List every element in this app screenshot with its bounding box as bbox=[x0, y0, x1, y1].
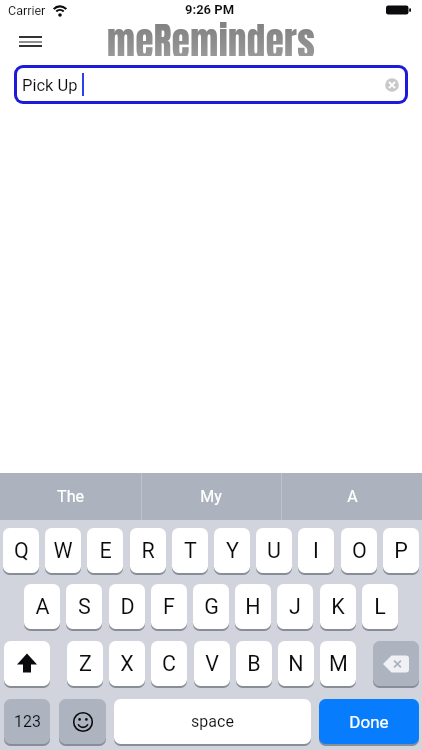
button[interactable]: I bbox=[298, 528, 334, 573]
staticText: A bbox=[347, 487, 358, 506]
button[interactable]: F bbox=[151, 584, 187, 629]
staticText: 123 bbox=[14, 712, 41, 731]
button[interactable]: N bbox=[278, 641, 314, 686]
staticText: Pick Up bbox=[22, 76, 78, 95]
button[interactable]: space bbox=[114, 699, 311, 744]
staticText: T bbox=[184, 538, 197, 563]
button[interactable]: T bbox=[172, 528, 208, 573]
staticText: D bbox=[120, 594, 135, 619]
button[interactable]: Y bbox=[214, 528, 250, 573]
button[interactable]: P bbox=[383, 528, 419, 573]
staticText: K bbox=[331, 594, 345, 619]
staticText: 9:26 PM bbox=[185, 2, 235, 17]
staticText: S bbox=[78, 594, 91, 619]
button[interactable]: A bbox=[282, 473, 422, 520]
staticText: A bbox=[35, 594, 50, 619]
staticText: J bbox=[289, 594, 301, 619]
staticText: M bbox=[329, 651, 348, 676]
button[interactable]: 123 bbox=[4, 699, 50, 744]
button[interactable]: L bbox=[362, 584, 398, 629]
staticText: The bbox=[57, 487, 84, 506]
button[interactable] bbox=[373, 641, 419, 686]
button[interactable]: K bbox=[320, 584, 356, 629]
button[interactable]: R bbox=[130, 528, 166, 573]
staticText: Z bbox=[79, 651, 92, 676]
button[interactable]: S bbox=[66, 584, 102, 629]
staticText: H bbox=[245, 594, 261, 619]
staticText: F bbox=[163, 594, 175, 619]
button[interactable]: Q bbox=[3, 528, 39, 573]
button[interactable]: M bbox=[320, 641, 356, 686]
button[interactable]: E bbox=[87, 528, 123, 573]
button[interactable] bbox=[14, 65, 408, 104]
button[interactable]: The bbox=[0, 473, 140, 520]
staticText: Q bbox=[14, 538, 29, 563]
button[interactable]: My bbox=[141, 473, 281, 520]
button[interactable]: A bbox=[24, 584, 60, 629]
staticText: V bbox=[205, 651, 219, 676]
button[interactable]: X bbox=[109, 641, 145, 686]
button[interactable] bbox=[4, 641, 50, 686]
staticText: C bbox=[162, 651, 176, 676]
staticText: W bbox=[53, 538, 73, 563]
staticText: R bbox=[141, 538, 155, 563]
button[interactable]: D bbox=[109, 584, 145, 629]
staticText: G bbox=[204, 594, 219, 619]
staticText: My bbox=[200, 487, 222, 506]
button[interactable]: C bbox=[151, 641, 187, 686]
button[interactable]: G bbox=[193, 584, 229, 629]
staticText: X bbox=[120, 651, 134, 676]
button[interactable]: O bbox=[341, 528, 377, 573]
button[interactable]: Done bbox=[319, 699, 419, 744]
button[interactable]: H bbox=[235, 584, 271, 629]
staticText: B bbox=[247, 651, 261, 676]
staticText: E bbox=[99, 538, 112, 563]
staticText: L bbox=[374, 594, 386, 619]
staticText: N bbox=[288, 651, 304, 676]
staticText: O bbox=[352, 538, 367, 563]
staticText: meReminders bbox=[107, 12, 316, 56]
button[interactable]: W bbox=[45, 528, 81, 573]
button[interactable]: B bbox=[236, 641, 272, 686]
button[interactable]: J bbox=[277, 584, 313, 629]
staticText: I bbox=[313, 538, 319, 563]
staticText: U bbox=[267, 538, 281, 563]
staticText: Carrier bbox=[8, 3, 46, 18]
staticText: Y bbox=[226, 538, 239, 563]
button[interactable]: V bbox=[194, 641, 230, 686]
button[interactable] bbox=[59, 699, 106, 744]
staticText: Done bbox=[349, 712, 389, 732]
staticText: space bbox=[191, 712, 234, 731]
button[interactable]: Z bbox=[67, 641, 103, 686]
button[interactable]: U bbox=[256, 528, 292, 573]
staticText: P bbox=[394, 538, 408, 563]
